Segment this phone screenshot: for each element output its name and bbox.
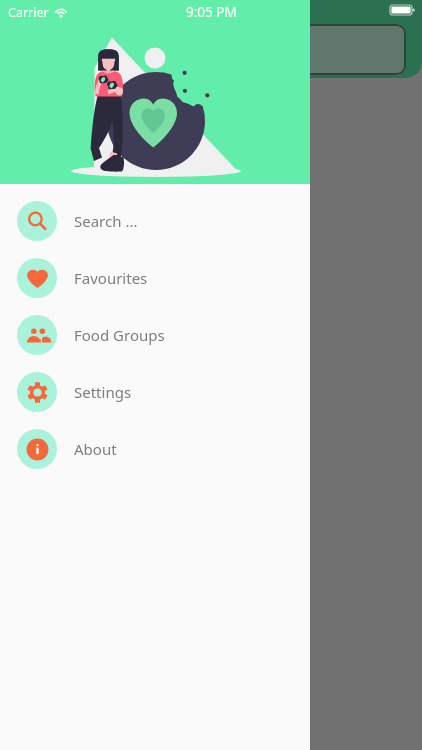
staticText: Carrier <box>8 4 49 21</box>
staticText: Food Groups <box>74 325 165 345</box>
staticText: Favourites <box>74 268 148 288</box>
button[interactable]: About <box>0 420 310 477</box>
button[interactable]: Search ... <box>0 192 310 249</box>
button[interactable]: Favourites <box>0 249 310 306</box>
staticText: Settings <box>74 382 132 402</box>
button[interactable]: Food Groups <box>0 306 310 363</box>
staticText: About <box>74 439 117 459</box>
button[interactable]: Settings <box>0 363 310 420</box>
staticText: Search ... <box>74 211 138 231</box>
staticText: 9:05 PM <box>186 3 237 21</box>
